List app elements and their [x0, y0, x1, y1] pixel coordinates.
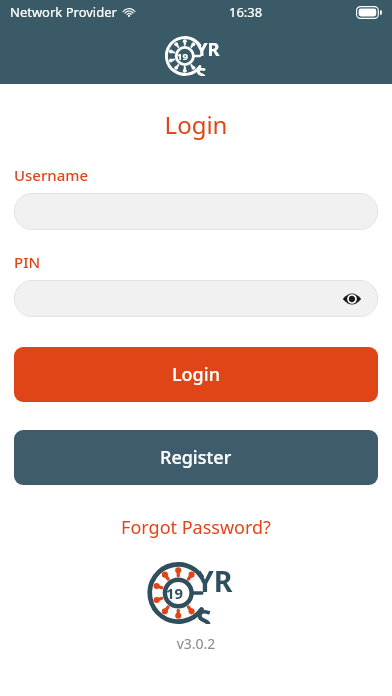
other: 19-YRS logo [146, 562, 246, 624]
staticText: 19 [166, 583, 184, 603]
button[interactable]: Username input [14, 193, 378, 230]
staticText: Username [14, 165, 89, 185]
staticText: Forgot Password? [121, 515, 271, 540]
button[interactable]: Show PIN [340, 287, 364, 311]
button[interactable]: PIN input [14, 280, 378, 317]
button[interactable]: Forgot Password? [14, 515, 378, 540]
staticText: PIN [14, 252, 41, 272]
staticText: 19 [177, 50, 188, 63]
staticText: Login [14, 108, 378, 141]
staticText: YRS [196, 36, 229, 76]
staticText: v3.0.2 [14, 634, 378, 653]
staticText: Login [172, 362, 220, 387]
staticText: Network Provider [10, 3, 117, 21]
staticText: 16:38 [229, 3, 263, 21]
button[interactable]: Login [14, 347, 378, 402]
staticText: Register [160, 445, 232, 470]
staticText: YRS [196, 562, 246, 624]
other: 19-YRS logo [164, 36, 229, 76]
button[interactable]: Register [14, 430, 378, 485]
